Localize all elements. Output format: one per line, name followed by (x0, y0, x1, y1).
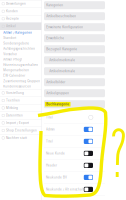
button[interactable]: Artikel Pflegt (0, 57, 41, 62)
staticText: Artikelmerkmale (49, 69, 75, 73)
staticText: Import / Export (6, 121, 29, 125)
button[interactable]: Kunden (0, 7, 41, 15)
button[interactable]: Artikelbeschreiben (44, 12, 105, 20)
button[interactable]: Mitbürg (0, 104, 41, 112)
button[interactable]: Neue Kunde (44, 147, 105, 159)
staticText: Admin (46, 128, 55, 131)
staticText: Standort (3, 36, 16, 40)
button[interactable]: Titel (44, 135, 105, 147)
button[interactable]: Mengenarbeiten (0, 68, 41, 73)
button[interactable]: Zusortierentrag Gruppen (0, 78, 41, 84)
button[interactable]: Standort (0, 35, 41, 41)
staticText: Shop Einstellungen (6, 129, 37, 132)
button[interactable]: Artikelgruppen (44, 89, 105, 97)
button[interactable]: Vorsteher (0, 51, 41, 57)
button[interactable]: Textilien (0, 97, 41, 104)
button[interactable]: Erwerbliche (44, 34, 105, 42)
staticText: Mitbürg (6, 106, 18, 110)
button[interactable]: Hitzeeinzugsverhalten (0, 62, 41, 68)
staticText: Rezepte (6, 17, 19, 20)
staticText: Aufstiegsgeschichten (3, 47, 35, 50)
button[interactable]: Erweiterte Konfiguration (44, 23, 105, 31)
staticText: Artikelbeschreiben (46, 14, 76, 18)
button[interactable]: Shop Einstellungen (0, 127, 41, 134)
button[interactable]: Artikelmerkmale (44, 56, 105, 64)
staticText: EW-Calendrier (3, 74, 25, 77)
staticText: Artikel Pflegt (3, 58, 22, 61)
staticText: Titel (46, 140, 53, 143)
staticText: Sonderangebote (3, 42, 29, 45)
staticText: Erweiterte Konfiguration (46, 25, 83, 29)
button[interactable]: Neukunde / Alt einschaltung (44, 183, 105, 195)
button[interactable]: Aufstiegsgeschichten (0, 46, 41, 51)
staticText: Datenritten (6, 114, 23, 117)
staticText: Kunden (6, 9, 18, 13)
button[interactable]: Admin (44, 123, 105, 135)
staticText: Zusortierentrag Gruppen (3, 79, 40, 83)
staticText: Neukunde BV (46, 176, 67, 179)
button[interactable]: Artikelbilder (44, 78, 105, 86)
staticText: Titel (46, 116, 53, 119)
button[interactable]: Artikel (0, 22, 41, 30)
staticText: Nachher statt (6, 136, 27, 140)
button[interactable]: EW-Calendrier (0, 73, 41, 78)
button[interactable]: Rezepte (0, 15, 41, 22)
staticText: Mengenarbeiten (3, 69, 29, 72)
button[interactable]: Artikelmerkmale (44, 67, 105, 75)
button[interactable]: Titel (44, 111, 105, 123)
button[interactable]: Bezugteil Kategorie (44, 45, 105, 53)
staticText: Erwerbliche (46, 36, 64, 40)
staticText: Artikelmerkmale (49, 58, 75, 62)
staticText: Header (46, 164, 57, 167)
button[interactable]: Artikel / Kategorien (0, 30, 41, 35)
staticText: Artikelbilder (46, 80, 65, 84)
staticText: Vorsteher (3, 52, 17, 56)
button[interactable]: Nachher statt (0, 134, 41, 142)
staticText: Buchkategorie (46, 102, 69, 106)
button[interactable]: Bewertungen (0, 0, 41, 7)
button[interactable]: Buchkategorie (44, 100, 105, 108)
staticText: Kundenressourcen (3, 85, 31, 88)
staticText: Neue Kunde (46, 152, 65, 155)
button[interactable]: Import / Export (0, 119, 41, 127)
staticText: Artikelgruppen (46, 91, 69, 95)
button[interactable]: Kategorien (44, 1, 105, 9)
staticText: Kategorien (46, 3, 63, 7)
staticText: Textilien (6, 99, 20, 102)
staticText: Bezugteil Kategorie (46, 47, 77, 51)
button[interactable]: Kundenressourcen (0, 84, 41, 89)
staticText: Vorstellung (6, 91, 24, 95)
staticText: Bewertungen (6, 2, 26, 5)
staticText: Artikel (6, 24, 16, 28)
button[interactable]: Vorstellung (0, 89, 41, 97)
button[interactable]: Header (44, 159, 105, 171)
button[interactable]: Neukunde BV (44, 171, 105, 183)
button[interactable]: Sonderangebote (0, 41, 41, 46)
staticText: Hitzeeinzugsverhalten (3, 63, 38, 67)
button[interactable]: Datenritten (0, 112, 41, 119)
staticText: Neukunde / Alt einschaltung (46, 188, 90, 191)
staticText: Artikel / Kategorien (3, 31, 32, 34)
